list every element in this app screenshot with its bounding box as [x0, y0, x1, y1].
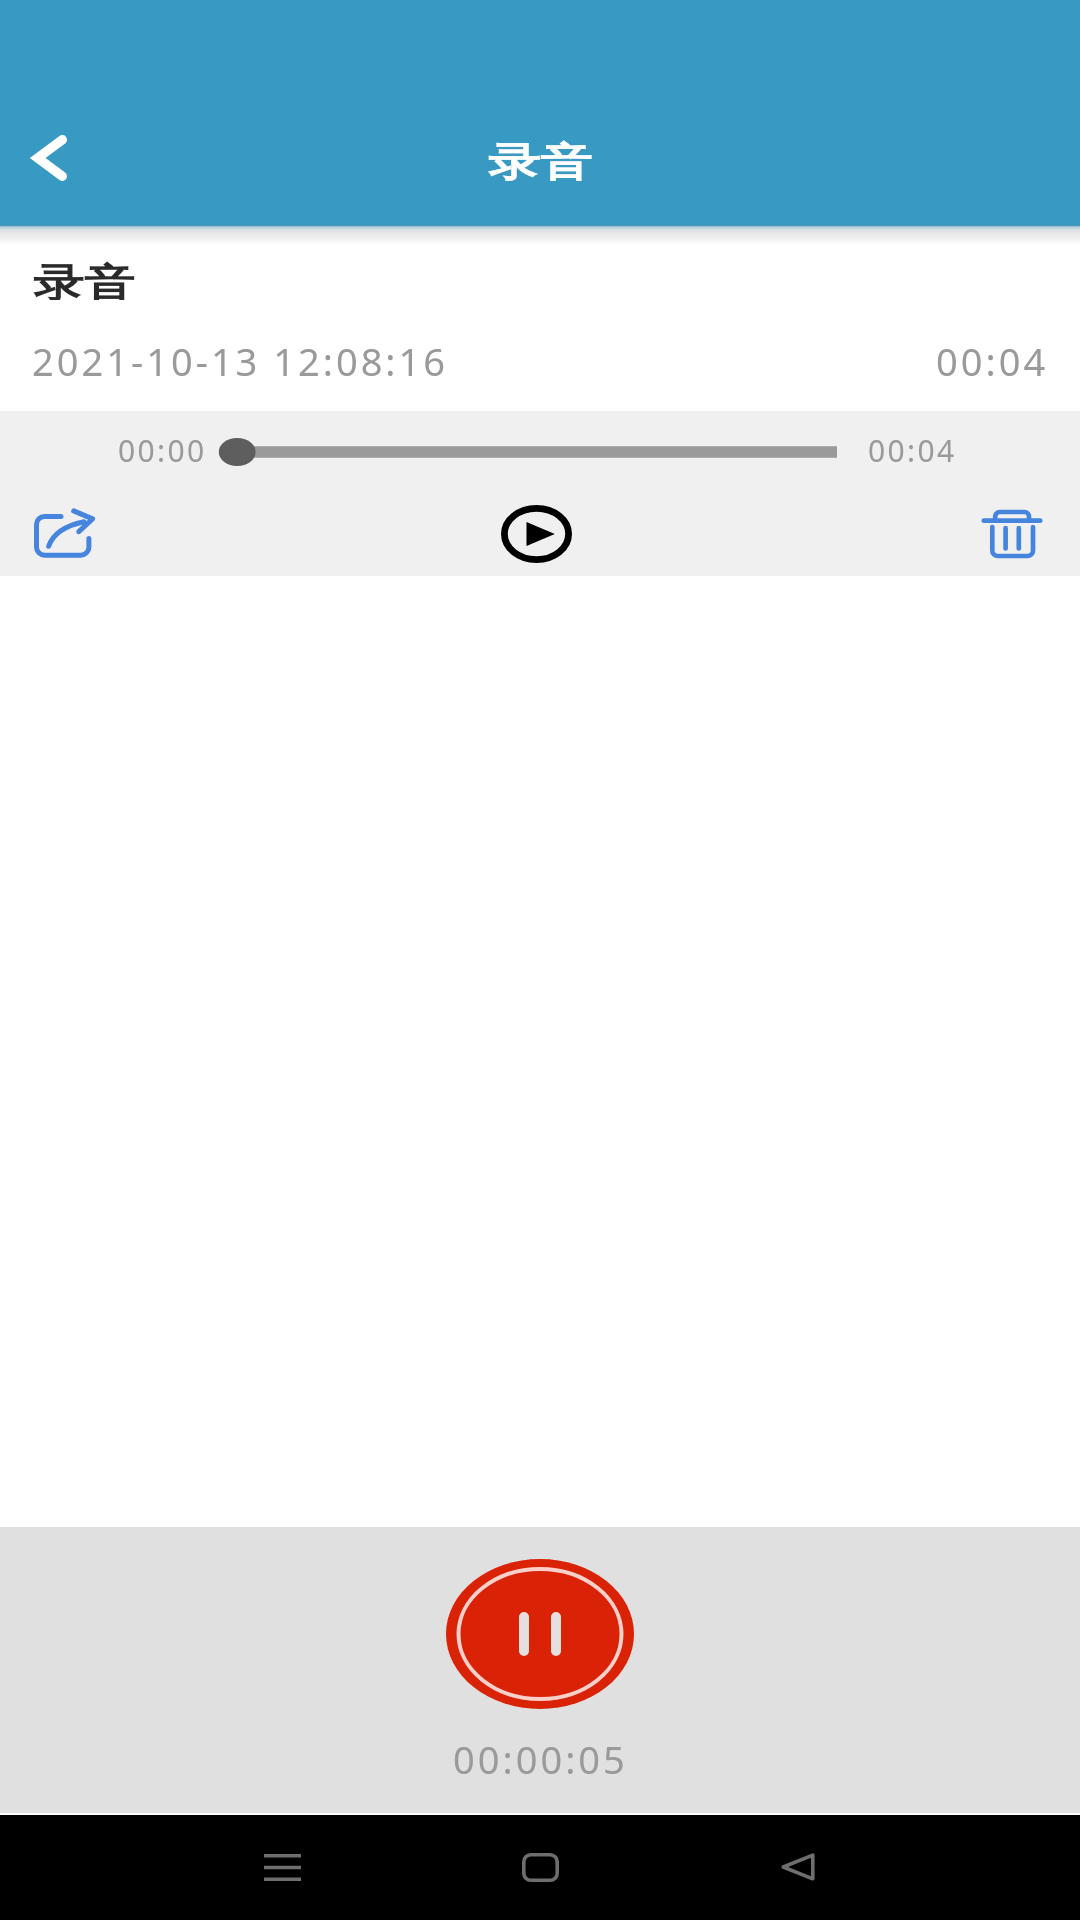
button[interactable]: Play [486, 495, 586, 573]
button[interactable]: Back [0, 108, 100, 208]
button[interactable]: Recent apps [232, 1817, 332, 1917]
button[interactable]: Share [13, 495, 113, 573]
staticText: 00:00:05 [453, 1733, 628, 1785]
button[interactable]: Delete [962, 495, 1062, 573]
button[interactable]: Home [490, 1817, 590, 1917]
staticText: 2021-10-13 12:08:16 [32, 335, 449, 387]
staticText: 00:00 [118, 430, 207, 471]
staticText: 录音 [488, 137, 592, 181]
staticText: 00:04 [936, 335, 1049, 387]
button[interactable]: 录音 [0, 231, 1080, 411]
staticText: 00:04 [868, 430, 957, 471]
staticText: 录音 [33, 258, 135, 300]
button[interactable]: Pause recording [446, 1559, 634, 1709]
button[interactable]: Back [748, 1817, 848, 1917]
